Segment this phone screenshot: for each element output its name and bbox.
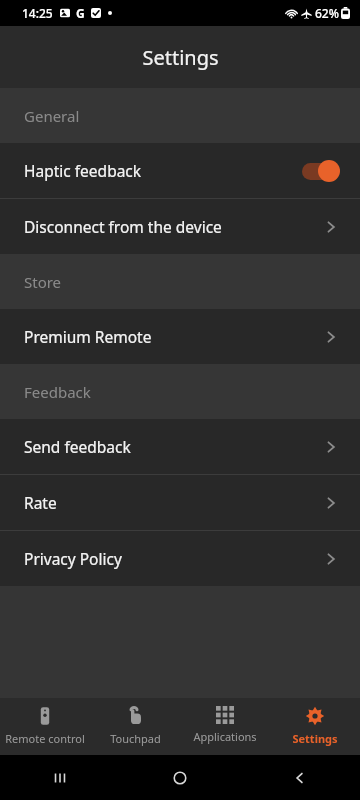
staticText: Haptic feedback [24, 160, 296, 181]
staticText: Send feedback [24, 436, 322, 457]
button[interactable]: Settings [270, 698, 360, 755]
button[interactable]: Applications [180, 698, 270, 755]
staticText: General [24, 106, 80, 126]
button[interactable]: Privacy Policy [0, 531, 360, 586]
staticText: G [76, 5, 85, 21]
button[interactable]: Touchpad [90, 698, 180, 755]
staticText: Applications [193, 729, 257, 744]
staticText: Store [24, 272, 62, 292]
button[interactable]: Send feedback [0, 419, 360, 474]
button[interactable]: Recent apps [0, 755, 120, 800]
button[interactable]: Haptic feedback [0, 143, 360, 198]
staticText: Premium Remote [24, 326, 322, 347]
button[interactable]: Remote control [0, 698, 90, 755]
button[interactable]: Rate [0, 475, 360, 530]
staticText: Remote control [5, 731, 85, 746]
other: Haptic feedback toggle [296, 160, 340, 182]
button[interactable]: Premium Remote [0, 309, 360, 364]
staticText: 14:25 [22, 5, 53, 21]
staticText: Rate [24, 492, 322, 513]
staticText: Settings [142, 44, 219, 71]
staticText: Privacy Policy [24, 548, 322, 569]
button[interactable]: Back [240, 755, 360, 800]
staticText: Feedback [24, 382, 91, 402]
staticText: 62% [315, 5, 339, 21]
button[interactable]: Home [120, 755, 240, 800]
staticText: Disconnect from the device [24, 216, 322, 237]
button[interactable]: Disconnect from the device [0, 199, 360, 254]
staticText: Settings [292, 731, 338, 746]
staticText: Touchpad [110, 731, 161, 746]
